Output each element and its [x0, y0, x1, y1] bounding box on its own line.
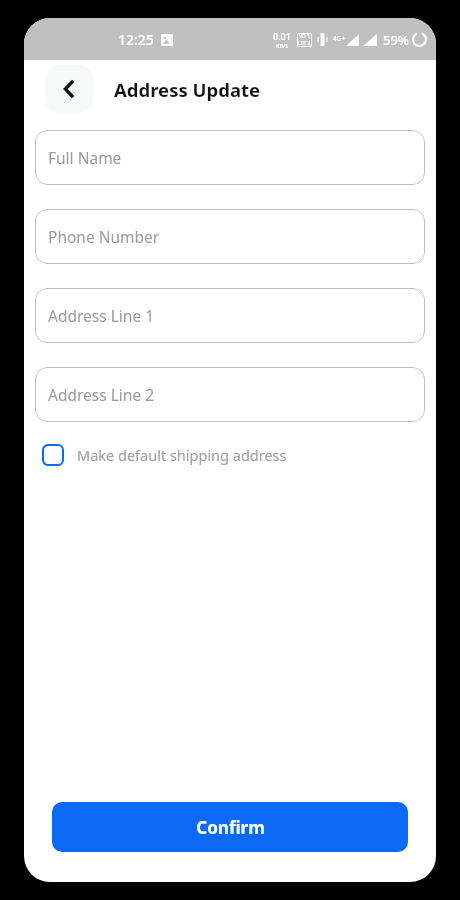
button[interactable]: Make default shipping address	[35, 436, 294, 474]
staticText: LTE 2	[298, 40, 311, 47]
staticText: Address Line 2	[48, 384, 155, 405]
button[interactable]: Full Name	[35, 130, 425, 185]
button[interactable]: Back	[45, 65, 93, 113]
staticText: Address Line 1	[48, 305, 155, 326]
staticText: Full Name	[48, 147, 122, 168]
staticText: KB/S	[276, 42, 289, 49]
staticText: Phone Number	[48, 226, 160, 247]
button[interactable]: Phone Number	[35, 209, 425, 264]
button[interactable]: Address Line 1	[35, 288, 425, 343]
staticText: Address Update	[114, 77, 261, 102]
staticText: 0.01	[273, 30, 291, 42]
staticText: 4G+	[333, 34, 346, 43]
button[interactable]: Address Line 2	[35, 367, 425, 422]
staticText: Make default shipping address	[77, 445, 287, 465]
staticText: 12:25	[118, 30, 154, 49]
staticText: Confirm	[196, 816, 265, 839]
staticText: VO 1	[299, 33, 311, 40]
button[interactable]: Confirm	[52, 802, 408, 852]
staticText: 59%	[383, 31, 409, 49]
